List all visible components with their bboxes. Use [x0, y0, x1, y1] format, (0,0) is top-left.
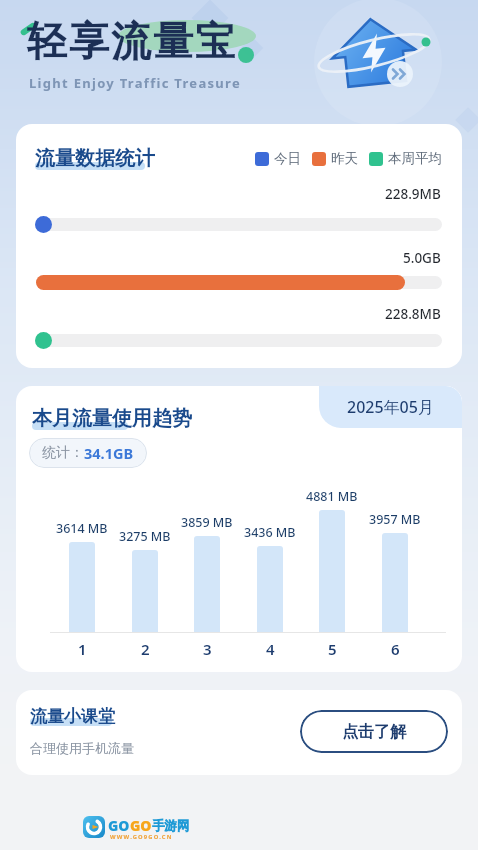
staticText: 流量小课堂 — [30, 706, 115, 727]
staticText: 3436 MB — [244, 524, 296, 541]
staticText: GO — [108, 816, 130, 835]
staticText: 2 — [141, 639, 150, 659]
staticText: 5 — [328, 639, 337, 659]
button[interactable]: 流量小课堂 — [16, 690, 462, 775]
staticText: 3275 MB — [119, 528, 171, 545]
staticText: Light Enjoy Traffic Treasure — [29, 74, 241, 92]
staticText: 4881 MB — [306, 488, 358, 505]
staticText: 合理使用手机流量 — [30, 740, 134, 756]
staticText: 点击了解 — [342, 722, 406, 742]
staticText: 今日 — [274, 150, 301, 167]
button[interactable]: 2025年05月 — [319, 386, 462, 428]
staticText: 本周平均 — [388, 150, 442, 167]
staticText: 228.9MB — [385, 185, 441, 203]
staticText: 6 — [391, 639, 400, 659]
staticText: 3859 MB — [181, 514, 233, 531]
staticText: 手游网 — [152, 818, 190, 834]
button[interactable]: GO — [83, 816, 190, 843]
staticText: WWW.GO9GO.CN — [110, 833, 173, 841]
staticText: 统计： — [42, 444, 84, 462]
staticText: 3614 MB — [56, 520, 108, 537]
staticText: 流量数据统计 — [35, 146, 155, 171]
staticText: GO — [130, 816, 152, 835]
staticText: 3957 MB — [369, 511, 421, 528]
staticText: 昨天 — [331, 150, 358, 167]
staticText: 轻享流量宝 — [26, 16, 236, 66]
staticText: 2025年05月 — [347, 396, 434, 418]
staticText: 1 — [78, 639, 87, 659]
button[interactable]: 点击了解 — [300, 710, 448, 753]
staticText: 本月流量使用趋势 — [32, 406, 192, 431]
staticText: 4 — [266, 639, 275, 659]
staticText: 34.1GB — [84, 443, 134, 463]
staticText: 3 — [203, 639, 212, 659]
staticText: 5.0GB — [403, 249, 441, 267]
staticText: 228.8MB — [385, 305, 441, 323]
button[interactable] — [300, 0, 460, 120]
